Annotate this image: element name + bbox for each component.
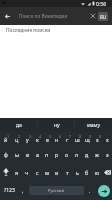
staticText: ж bbox=[95, 151, 99, 158]
staticText: в bbox=[26, 151, 29, 158]
staticText: е bbox=[46, 136, 49, 143]
button[interactable]: Shift bbox=[0, 163, 11, 181]
staticText: д bbox=[85, 151, 89, 158]
button[interactable]: в bbox=[22, 146, 32, 163]
staticText: , bbox=[22, 187, 24, 194]
button[interactable]: ь bbox=[72, 163, 82, 181]
staticText: 0 bbox=[99, 134, 102, 139]
staticText: ф bbox=[4, 151, 8, 158]
staticText: 7 bbox=[69, 134, 72, 139]
button[interactable]: у bbox=[22, 132, 32, 146]
button[interactable]: я bbox=[11, 163, 22, 181]
staticText: 8 bbox=[79, 134, 82, 139]
button[interactable]: RU bbox=[98, 12, 108, 21]
staticText: а bbox=[36, 151, 39, 158]
staticText: у bbox=[26, 136, 29, 143]
staticText: р bbox=[55, 151, 59, 158]
staticText: т bbox=[66, 169, 69, 176]
button[interactable]: м bbox=[42, 163, 52, 181]
staticText: п bbox=[45, 151, 49, 158]
button[interactable]: й bbox=[0, 132, 11, 146]
staticText: 4 bbox=[39, 134, 42, 139]
staticText: и bbox=[55, 169, 59, 176]
button[interactable]: б bbox=[82, 163, 92, 181]
staticText: ы bbox=[15, 151, 19, 158]
staticText: 3 bbox=[29, 134, 32, 139]
button[interactable]: ж bbox=[92, 146, 102, 163]
button[interactable]: з bbox=[92, 132, 102, 146]
staticText: ш bbox=[75, 136, 80, 143]
staticText: ц bbox=[15, 136, 19, 143]
staticText: э bbox=[106, 151, 109, 158]
staticText: з bbox=[96, 136, 99, 143]
button[interactable]: Back bbox=[0, 7, 15, 25]
button[interactable]: Backspace bbox=[102, 163, 112, 181]
button[interactable]: л bbox=[72, 146, 82, 163]
staticText: 2 bbox=[18, 134, 21, 139]
button[interactable]: , bbox=[18, 181, 28, 200]
staticText: 9 bbox=[89, 134, 92, 139]
staticText: . bbox=[89, 187, 91, 194]
staticText: ну bbox=[54, 122, 60, 129]
staticText: м bbox=[45, 169, 49, 176]
button[interactable]: к bbox=[32, 132, 42, 146]
button[interactable]: п bbox=[42, 146, 52, 163]
staticText: да bbox=[16, 122, 22, 129]
button[interactable]: . bbox=[83, 181, 96, 200]
button[interactable]: ш bbox=[72, 132, 82, 146]
button[interactable]: ?123 bbox=[0, 181, 18, 200]
staticText: я bbox=[15, 169, 18, 176]
button[interactable]: а bbox=[32, 146, 42, 163]
button[interactable]: г bbox=[62, 132, 72, 146]
staticText: Поиск по Википедии bbox=[19, 13, 87, 20]
staticText: ч bbox=[25, 169, 29, 176]
staticText: б bbox=[85, 169, 89, 176]
staticText: маму bbox=[87, 122, 101, 129]
button[interactable]: е bbox=[42, 132, 52, 146]
button[interactable]: Search bbox=[96, 181, 112, 200]
button[interactable]: р bbox=[52, 146, 62, 163]
staticText: Русский bbox=[48, 188, 65, 194]
button[interactable]: о bbox=[62, 146, 72, 163]
staticText: 1 bbox=[7, 134, 10, 139]
button[interactable]: д bbox=[82, 146, 92, 163]
button[interactable]: э bbox=[102, 146, 112, 163]
button[interactable]: ф bbox=[0, 146, 11, 163]
button[interactable]: да bbox=[0, 118, 38, 132]
staticText: ю bbox=[95, 169, 100, 176]
staticText: с bbox=[36, 169, 39, 176]
staticText: 5 bbox=[49, 134, 52, 139]
button[interactable]: х bbox=[102, 132, 112, 146]
button[interactable]: Русский bbox=[29, 186, 84, 195]
button[interactable]: маму bbox=[75, 118, 112, 132]
staticText: щ bbox=[85, 136, 90, 143]
staticText: ?123 bbox=[4, 187, 15, 194]
button[interactable]: с bbox=[32, 163, 42, 181]
button[interactable]: ы bbox=[11, 146, 22, 163]
button[interactable]: ну bbox=[38, 118, 75, 132]
staticText: к bbox=[36, 136, 39, 143]
staticText: RU bbox=[100, 14, 107, 20]
button[interactable]: т bbox=[62, 163, 72, 181]
button[interactable]: ц bbox=[11, 132, 22, 146]
staticText: х bbox=[106, 136, 109, 143]
staticText: й bbox=[4, 136, 8, 143]
staticText: н bbox=[55, 136, 59, 143]
staticText: 6 bbox=[59, 134, 62, 139]
button[interactable]: н bbox=[52, 132, 62, 146]
staticText: о bbox=[65, 151, 69, 158]
button[interactable]: щ bbox=[82, 132, 92, 146]
button[interactable]: Clear bbox=[87, 7, 98, 25]
staticText: г bbox=[66, 136, 69, 143]
staticText: Последние поиски bbox=[6, 27, 51, 34]
staticText: ь bbox=[76, 169, 79, 176]
staticText: 0:56 bbox=[96, 0, 107, 7]
button[interactable]: ю bbox=[92, 163, 102, 181]
button[interactable]: ч bbox=[22, 163, 32, 181]
button[interactable]: и bbox=[52, 163, 62, 181]
staticText: л bbox=[75, 151, 79, 158]
